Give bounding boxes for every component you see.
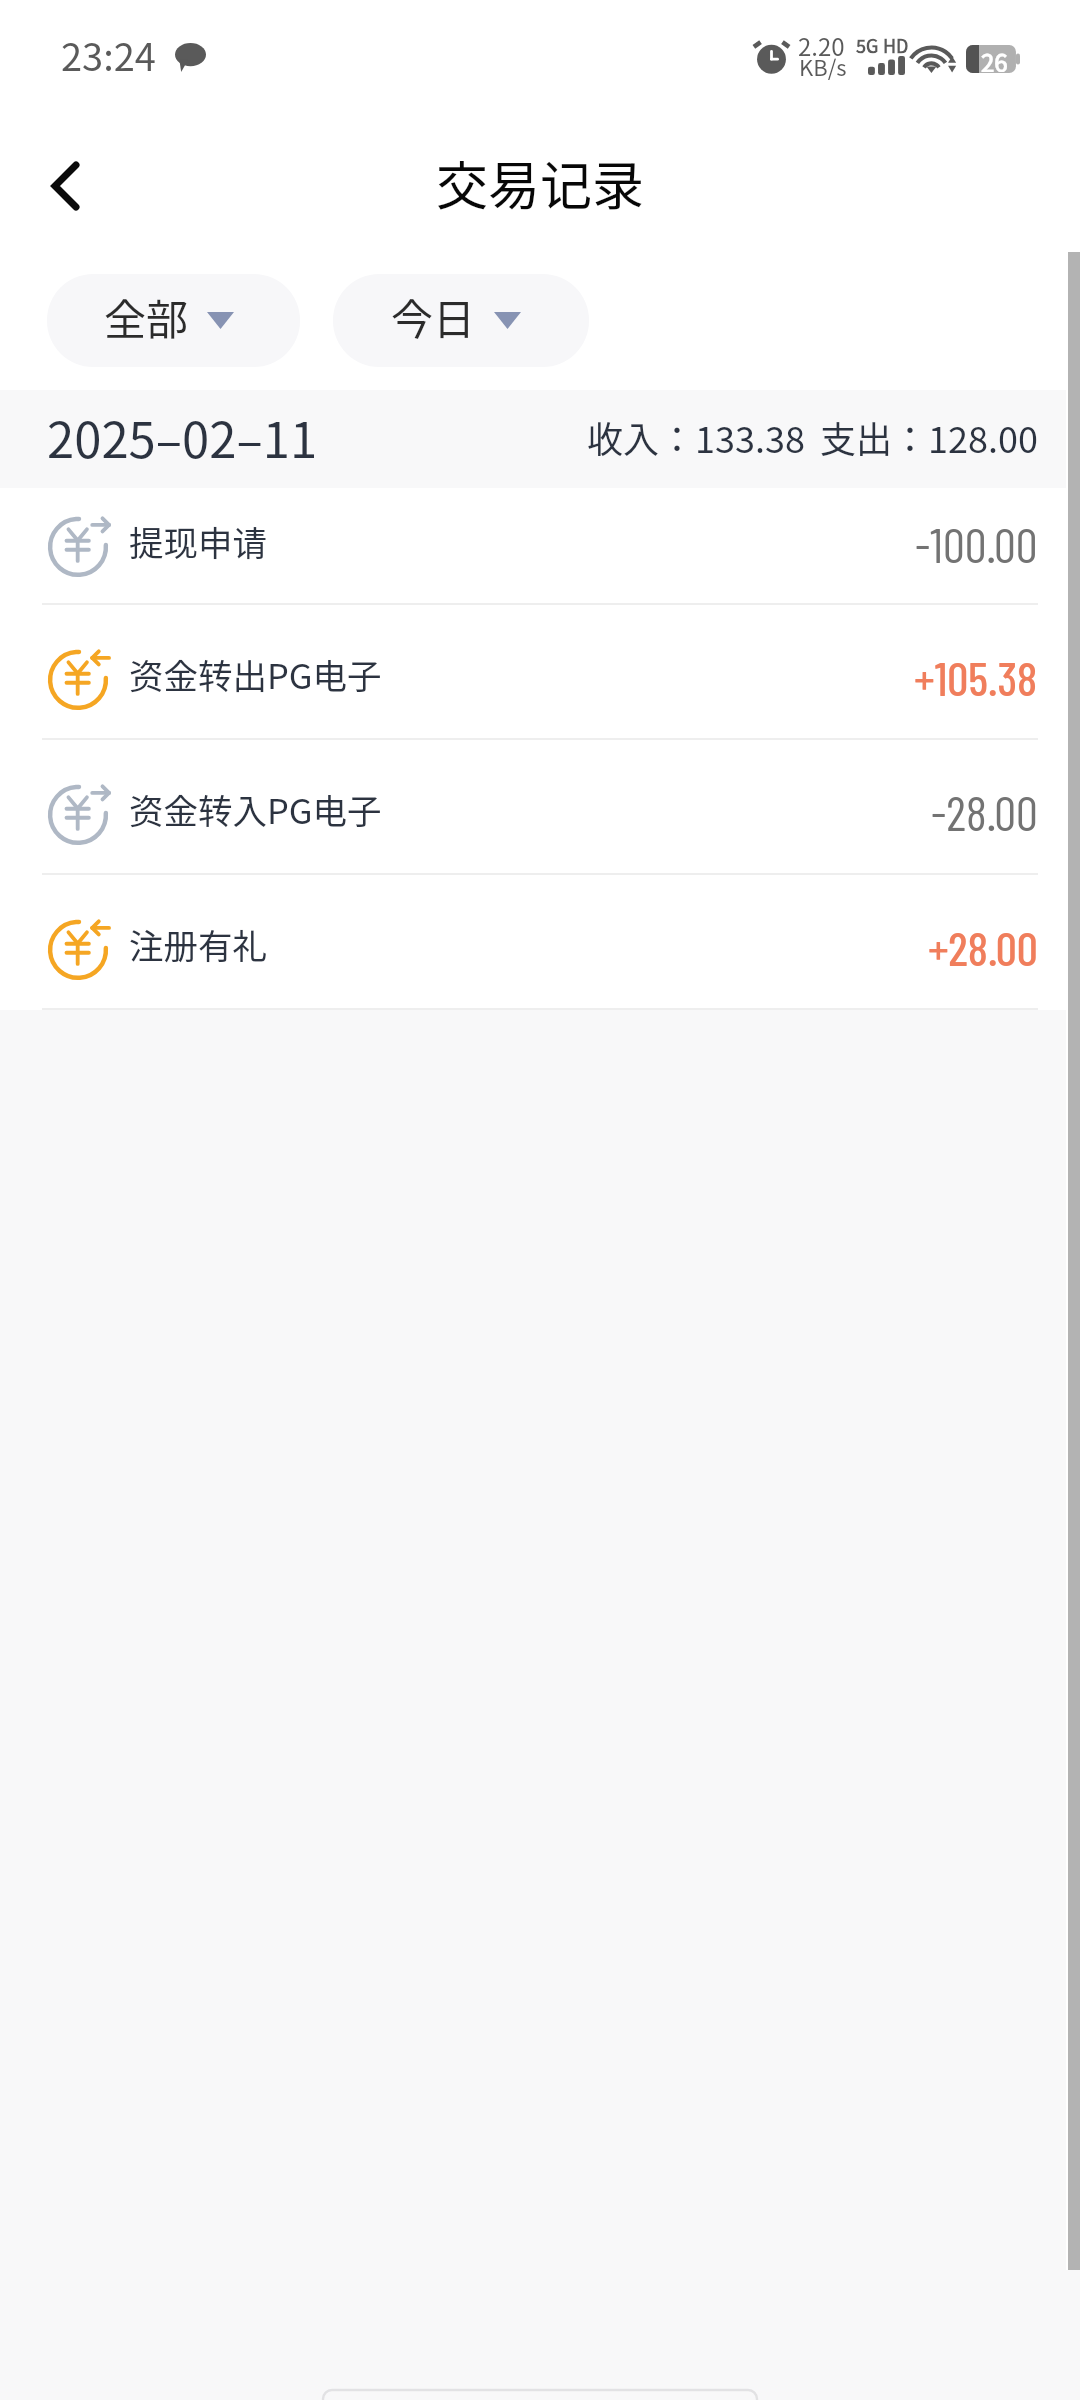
button[interactable]: 全部	[47, 274, 300, 367]
staticText: 注册有礼	[129, 919, 267, 969]
staticText: 全部	[104, 286, 189, 347]
staticText: 5G	[856, 32, 879, 58]
button[interactable]: Back	[3, 135, 99, 231]
staticText: 交易记录	[436, 145, 645, 220]
staticText: -100.00	[915, 514, 1038, 573]
staticText: 资金转出PG电子	[129, 649, 382, 699]
staticText: -28.00	[931, 782, 1038, 841]
button[interactable]: 资金转出PG电子	[0, 605, 1080, 738]
button[interactable]: 注册有礼	[0, 875, 1080, 1008]
staticText: 今日	[391, 286, 476, 347]
staticText: +28.00	[928, 919, 1038, 975]
staticText: 2.20	[798, 28, 845, 63]
button[interactable]: 资金转入PG电子	[0, 740, 1080, 873]
staticText: 26	[981, 44, 1008, 72]
button[interactable]: 今日	[333, 274, 589, 367]
button[interactable]: 提现申请	[0, 488, 1080, 603]
staticText: HD	[883, 32, 909, 58]
staticText: 2025–02–11	[47, 401, 318, 472]
staticText: 提现申请	[129, 516, 267, 566]
staticText: 23:24	[61, 27, 156, 82]
staticText: KB/s	[799, 50, 847, 82]
staticText: 资金转入PG电子	[129, 784, 382, 834]
staticText: 收入：133.38	[587, 411, 805, 463]
staticText: +105.38	[914, 649, 1038, 705]
staticText: 支出：128.00	[820, 411, 1038, 463]
